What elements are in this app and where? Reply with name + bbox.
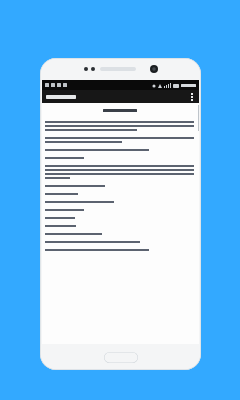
button[interactable]: More options	[42, 90, 199, 103]
button[interactable]: More options	[189, 91, 195, 103]
button[interactable]: Home	[104, 352, 138, 363]
